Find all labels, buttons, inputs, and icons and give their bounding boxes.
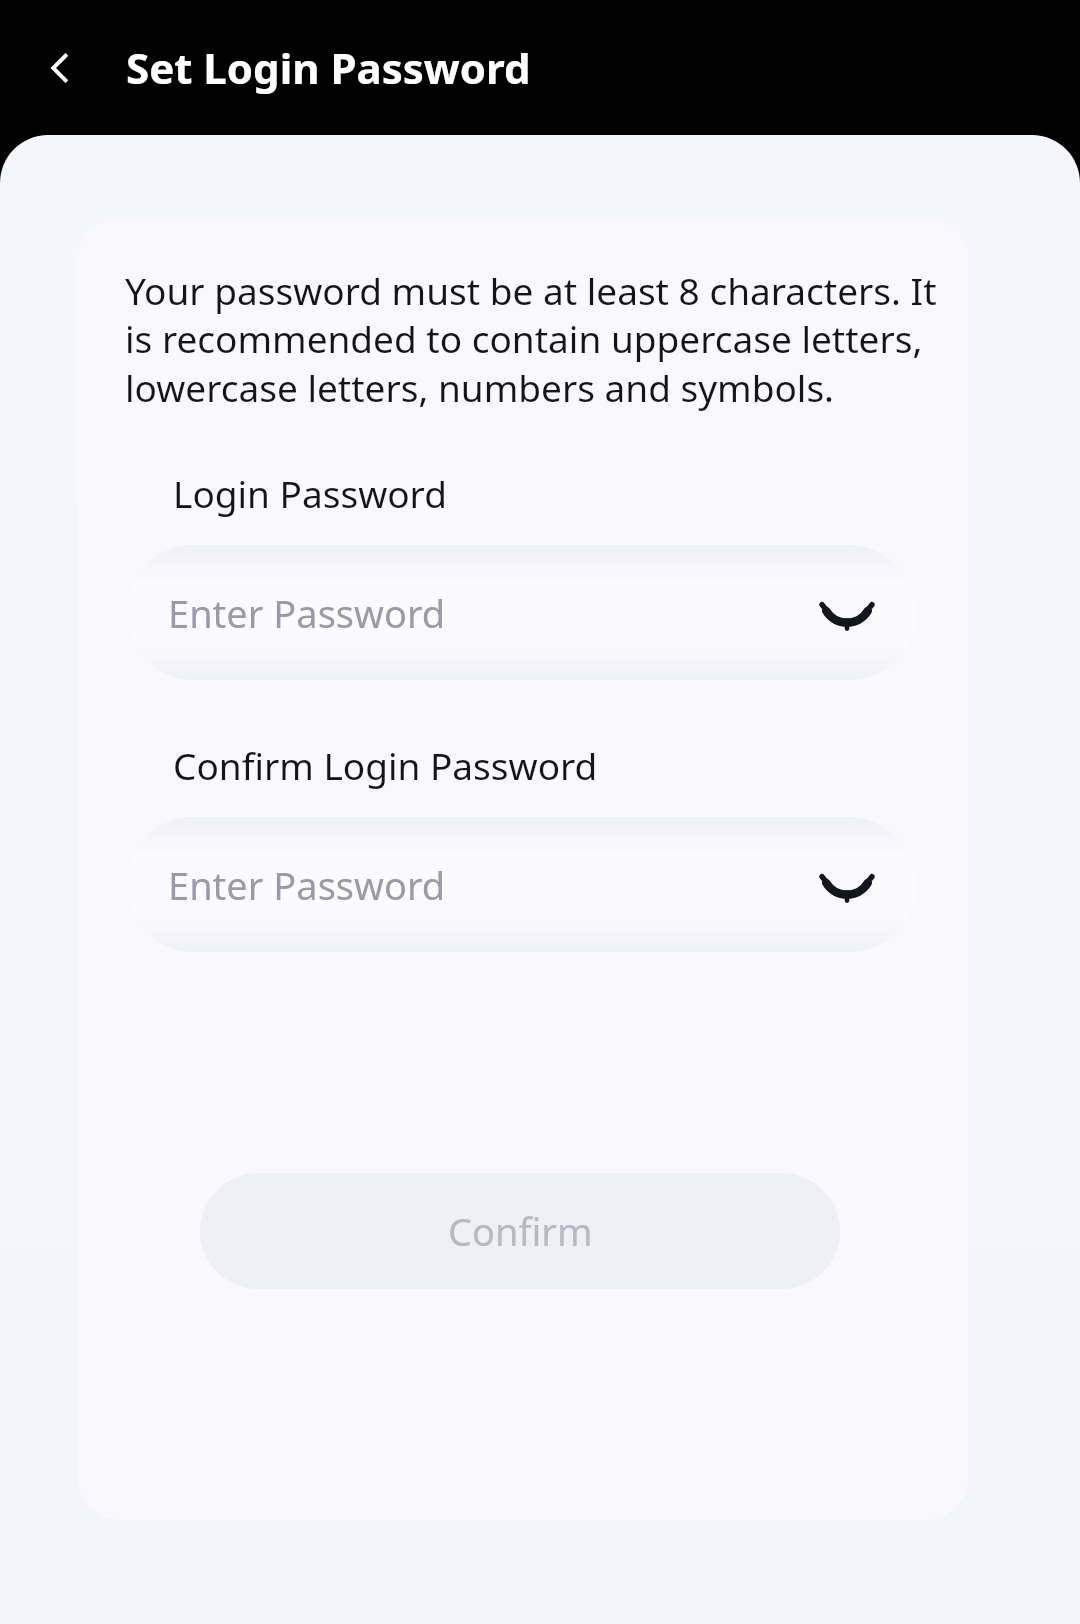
button[interactable]: Enter Password <box>126 817 916 952</box>
staticText: Set Login Password <box>126 39 531 96</box>
staticText: Confirm Login Password <box>173 740 598 790</box>
button[interactable]: Back <box>22 30 98 106</box>
staticText: Enter Password <box>168 859 446 911</box>
staticText: Enter Password <box>168 587 446 639</box>
button[interactable]: Confirm <box>200 1173 840 1289</box>
staticText: Confirm <box>448 1205 593 1257</box>
staticText: Login Password <box>173 468 447 518</box>
staticText: Your password must be at least 8 charact… <box>125 265 938 413</box>
button[interactable]: Enter Password <box>126 545 916 680</box>
button[interactable]: Show password <box>808 574 886 652</box>
button[interactable]: Show password <box>808 846 886 924</box>
